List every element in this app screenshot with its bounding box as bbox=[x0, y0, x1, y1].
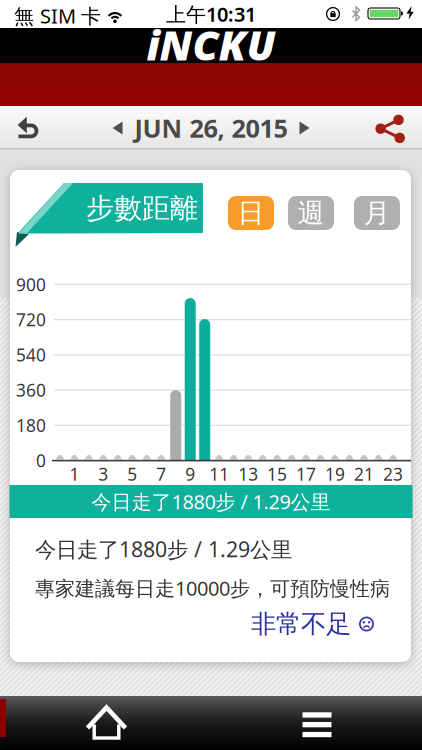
staticText: 月 bbox=[363, 197, 390, 229]
staticText: JUN 26, 2015 bbox=[134, 111, 287, 145]
staticText: 13 bbox=[238, 462, 258, 485]
staticText: 專家建議每日走10000步，可預防慢性病 bbox=[35, 575, 390, 601]
button[interactable]: JUN 26, 2015 bbox=[91, 106, 331, 149]
staticText: 3 bbox=[98, 462, 108, 485]
staticText: 0 bbox=[36, 449, 46, 472]
staticText: iNCKU bbox=[146, 17, 275, 72]
staticText: 日 bbox=[237, 197, 264, 229]
staticText: 9 bbox=[185, 462, 195, 485]
staticText: 17 bbox=[296, 462, 316, 485]
staticText: 720 bbox=[16, 308, 46, 331]
staticText: 19 bbox=[325, 462, 345, 485]
staticText: 180 bbox=[16, 414, 46, 437]
staticText: 今日走了1880步 / 1.29公里 bbox=[91, 488, 330, 515]
staticText: 23 bbox=[383, 462, 403, 485]
button[interactable]: 日 bbox=[228, 196, 274, 230]
staticText: 21 bbox=[354, 462, 374, 485]
staticText: 上午10:31 bbox=[166, 1, 256, 27]
staticText: 無 SIM 卡 bbox=[14, 2, 101, 29]
staticText: 540 bbox=[16, 343, 46, 366]
staticText: 360 bbox=[16, 379, 46, 402]
button[interactable] bbox=[266, 696, 366, 750]
button[interactable] bbox=[55, 696, 155, 750]
staticText: 900 bbox=[16, 273, 46, 296]
staticText: 5 bbox=[127, 462, 137, 485]
staticText: 7 bbox=[156, 462, 166, 485]
button[interactable]: 月 bbox=[354, 196, 400, 230]
button[interactable] bbox=[8, 107, 52, 147]
staticText: 非常不足 bbox=[251, 608, 351, 639]
staticText: 1 bbox=[69, 462, 79, 485]
staticText: 步數距離 bbox=[86, 191, 198, 226]
staticText: 週 bbox=[297, 197, 324, 229]
staticText: 15 bbox=[267, 462, 287, 485]
button[interactable] bbox=[370, 108, 410, 148]
staticText: 今日走了1880步 / 1.29公里 bbox=[35, 535, 292, 563]
staticText: 11 bbox=[209, 462, 229, 485]
button[interactable]: 週 bbox=[288, 196, 334, 230]
